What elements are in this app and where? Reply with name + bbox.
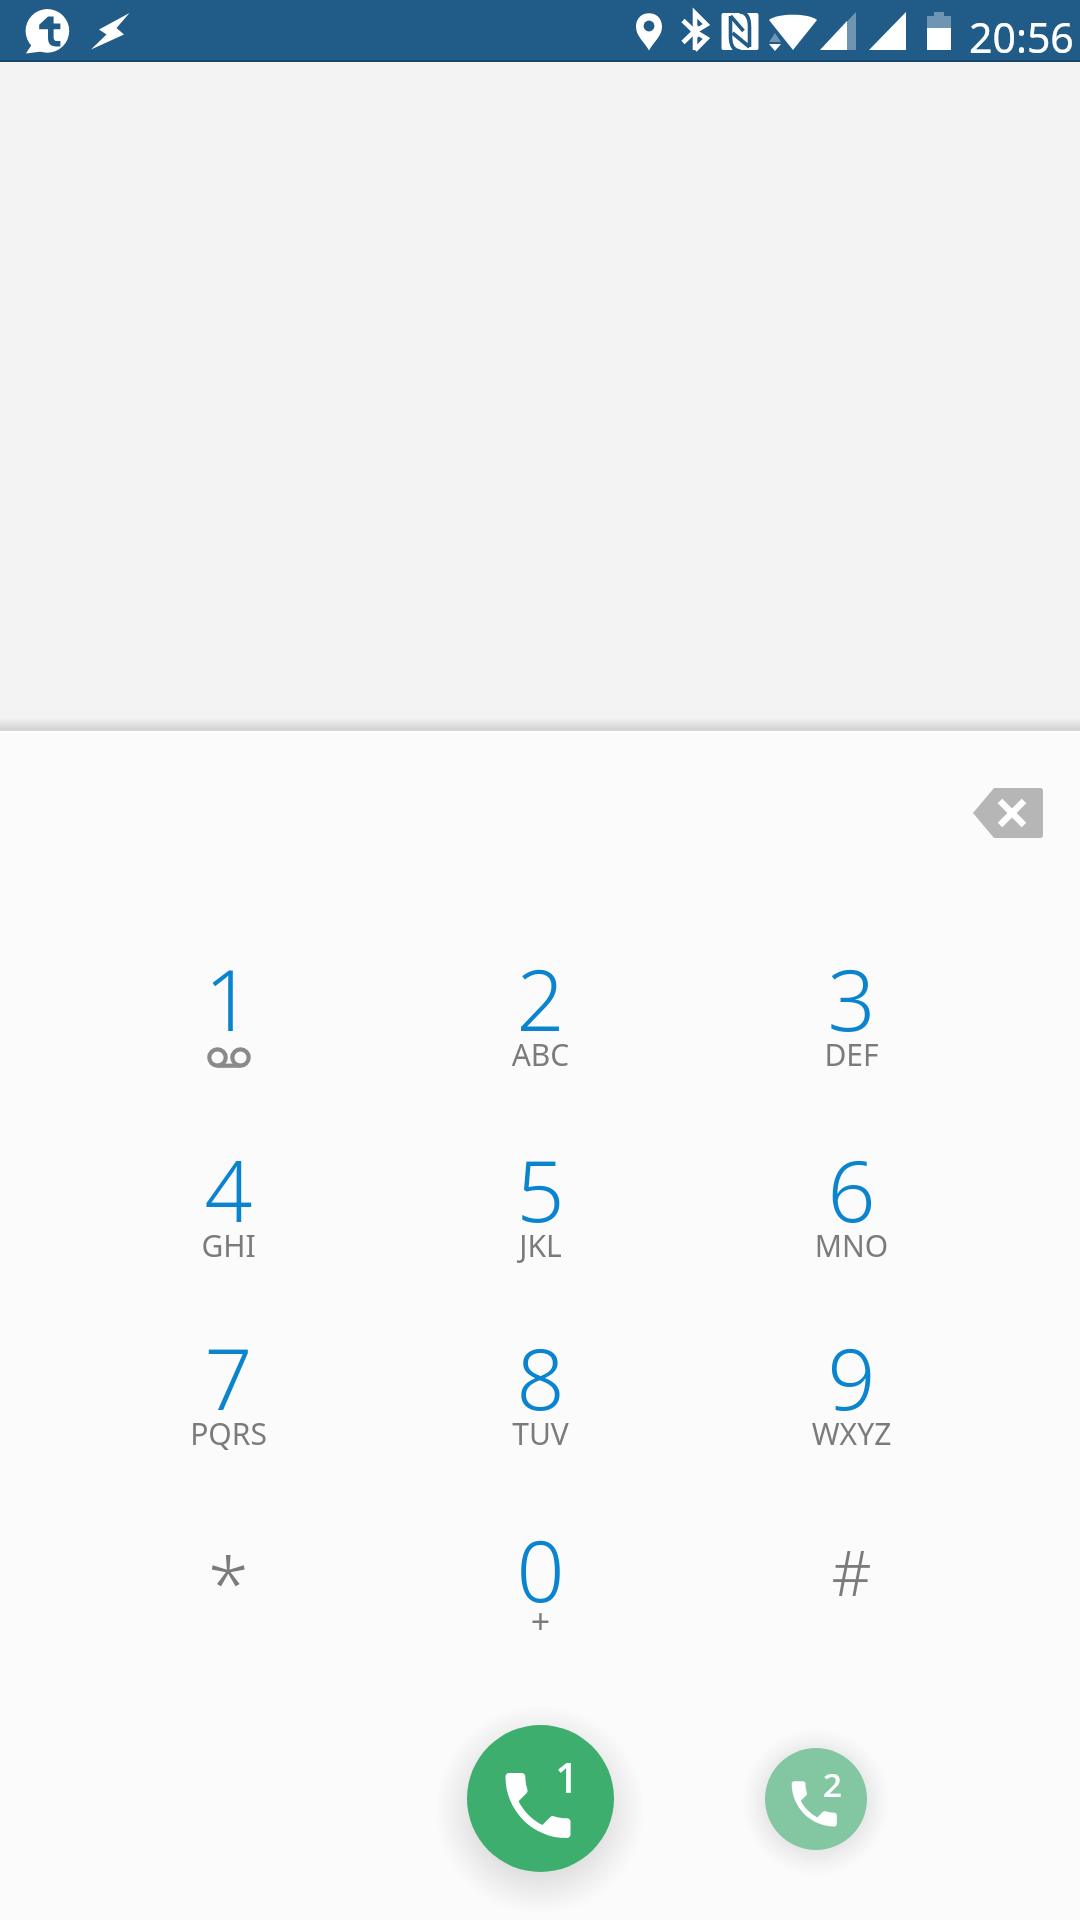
staticText: 7 <box>73 1320 384 1434</box>
staticText: 2 <box>385 941 696 1055</box>
staticText: 8 <box>385 1320 696 1434</box>
button[interactable]: 0 <box>385 1512 696 1702</box>
button[interactable]: 1 <box>73 941 384 1131</box>
button[interactable]: Backspace <box>958 763 1058 863</box>
staticText: MNO <box>696 1225 1007 1266</box>
button[interactable]: 6 <box>696 1132 1007 1322</box>
staticText: * <box>73 1532 384 1633</box>
button[interactable]: 2 <box>385 941 696 1131</box>
button[interactable]: 5 <box>385 1132 696 1322</box>
staticText: WXYZ <box>696 1413 1007 1454</box>
staticText: GHI <box>73 1225 384 1266</box>
staticText: DEF <box>696 1034 1007 1075</box>
staticText: 5 <box>385 1132 696 1246</box>
staticText: JKL <box>385 1225 696 1266</box>
staticText: PQRS <box>73 1413 384 1454</box>
staticText: 6 <box>696 1132 1007 1246</box>
button[interactable]: 9 <box>696 1320 1007 1510</box>
button[interactable]: 7 <box>73 1320 384 1510</box>
staticText: ABC <box>385 1034 696 1075</box>
button[interactable]: # <box>696 1512 1007 1702</box>
staticText: 1 <box>73 941 384 1055</box>
staticText: + <box>385 1598 696 1644</box>
button[interactable]: * <box>73 1512 384 1702</box>
button[interactable]: 8 <box>385 1320 696 1510</box>
button[interactable]: Call with SIM 1 <box>467 1725 614 1872</box>
staticText: 0 <box>385 1512 696 1626</box>
button[interactable]: Call with SIM 2 <box>765 1748 867 1850</box>
staticText: 2 <box>823 1762 842 1807</box>
staticText: 9 <box>696 1320 1007 1434</box>
button[interactable]: 4 <box>73 1132 384 1322</box>
staticText: 20:56 <box>969 9 1074 65</box>
staticText: TUV <box>385 1413 696 1454</box>
staticText: 1 <box>555 1748 580 1805</box>
staticText: 4 <box>73 1132 384 1246</box>
staticText: 3 <box>696 941 1007 1055</box>
staticText: # <box>696 1530 1007 1614</box>
button[interactable]: 3 <box>696 941 1007 1131</box>
